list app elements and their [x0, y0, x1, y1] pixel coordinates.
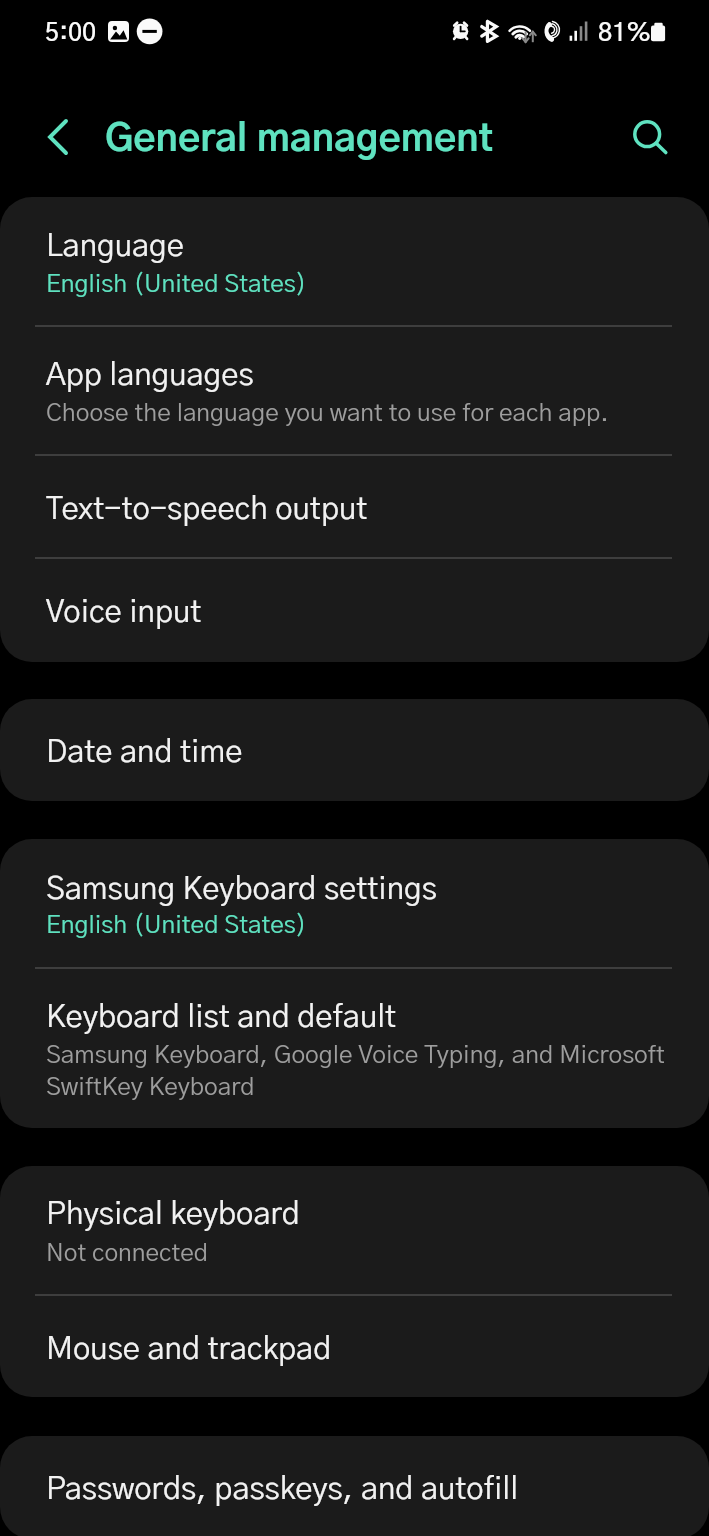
- staticText: English (United States): [46, 272, 666, 297]
- staticText: 81%: [598, 21, 652, 46]
- staticText: Voice input: [46, 597, 202, 628]
- button[interactable]: [0, 454, 709, 557]
- staticText: Date and time: [46, 737, 243, 768]
- staticText: Not connected: [46, 1241, 666, 1266]
- staticText: Language: [46, 231, 184, 262]
- staticText: 5:00: [45, 21, 97, 46]
- button[interactable]: [0, 699, 709, 801]
- button[interactable]: Navigate up: [30, 109, 87, 166]
- staticText: Text-to-speech output: [46, 494, 368, 525]
- staticText: General management: [105, 121, 494, 159]
- button[interactable]: Search: [618, 106, 675, 163]
- button[interactable]: [0, 1294, 709, 1397]
- staticText: Passwords, passkeys, and autofill: [46, 1474, 519, 1505]
- staticText: Mouse and trackpad: [46, 1334, 332, 1365]
- button[interactable]: [0, 839, 709, 967]
- staticText: Physical keyboard: [46, 1199, 300, 1230]
- button[interactable]: [0, 557, 709, 662]
- button[interactable]: [0, 197, 709, 325]
- staticText: Keyboard list and default: [46, 1002, 397, 1033]
- button[interactable]: [0, 325, 709, 454]
- button[interactable]: [0, 1436, 709, 1536]
- staticText: English (United States): [46, 913, 666, 938]
- staticText: Samsung Keyboard, Google Voice Typing, a…: [46, 1043, 666, 1100]
- button[interactable]: [0, 967, 709, 1128]
- staticText: Samsung Keyboard settings: [46, 874, 437, 905]
- staticText: Choose the language you want to use for …: [46, 401, 666, 426]
- button[interactable]: [0, 1166, 709, 1294]
- staticText: App languages: [46, 360, 254, 391]
